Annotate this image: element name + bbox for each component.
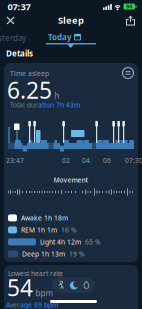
staticText: 04: [82, 156, 90, 165]
staticText: 6.25: [7, 75, 52, 105]
staticText: 07:37: [7, 0, 30, 13]
staticText: 94: [126, 3, 132, 10]
staticText: Details: [6, 48, 33, 59]
staticText: Total duration 7h 43m: [10, 100, 80, 109]
staticText: Time asleep: [10, 69, 49, 78]
button[interactable]: Heart rate view selector: [52, 277, 95, 293]
staticText: bpm: [35, 288, 52, 298]
staticText: 16 %: [61, 225, 77, 234]
staticText: 23:47: [6, 156, 24, 165]
button[interactable]: Share: [123, 13, 138, 29]
button[interactable]: Close: [3, 13, 18, 28]
staticText: Deep 1h 13m: [22, 249, 65, 258]
staticText: Movement: [53, 175, 88, 184]
staticText: 65 %: [85, 237, 101, 246]
button[interactable]: Edit sleep time: [122, 67, 133, 78]
button[interactable]: Yesterday: [0, 32, 26, 43]
staticText: 02: [62, 156, 70, 165]
staticText: sterday: [0, 32, 26, 43]
staticText: Today: [48, 32, 71, 42]
staticText: 19 %: [69, 249, 85, 258]
staticText: 06: [103, 156, 111, 165]
staticText: Sleep: [58, 14, 84, 26]
staticText: 07:30: [125, 156, 142, 165]
staticText: 54: [7, 272, 33, 303]
staticText: Light 4h 12m: [40, 237, 81, 246]
staticText: Lowest heart rate: [8, 269, 63, 278]
staticText: Awake 1h 18m: [21, 213, 68, 222]
button[interactable]: Today: [48, 32, 81, 42]
staticText: h: [54, 90, 59, 101]
staticText: REM 1h 1m: [21, 225, 57, 234]
staticText: Average 69 bpm: [6, 300, 58, 309]
